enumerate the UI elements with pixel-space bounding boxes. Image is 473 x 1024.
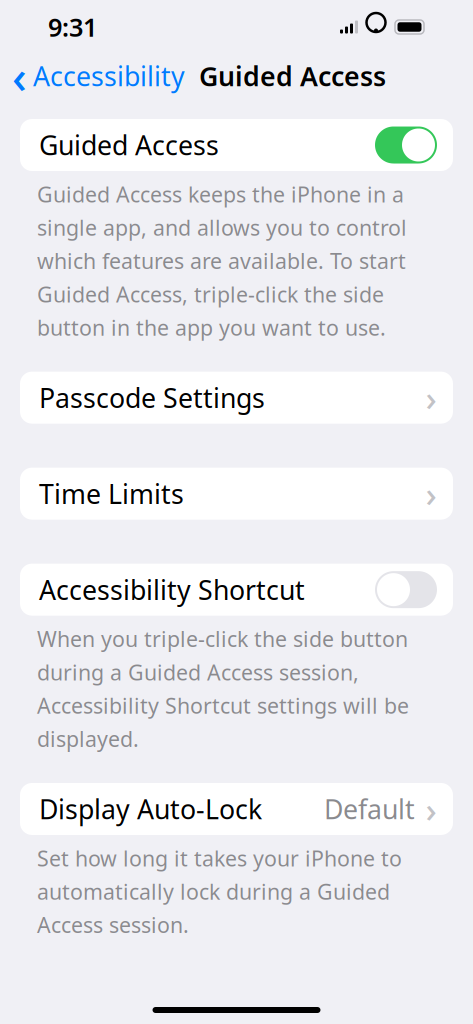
button[interactable]: ‹ (0, 54, 189, 98)
staticText: › (425, 786, 436, 832)
staticText: Passcode Settings (39, 380, 265, 415)
staticText: Guided Access (199, 58, 386, 94)
button[interactable]: Passcode Settings (20, 372, 453, 424)
button[interactable]: Accessibility Shortcut (20, 564, 453, 616)
button[interactable]: Display Auto-Lock (20, 783, 453, 835)
staticText: › (425, 375, 436, 421)
staticText: ‹ (12, 46, 27, 106)
staticText: Guided Access (39, 127, 219, 163)
staticText: Default (324, 791, 415, 827)
staticText: Set how long it takes your iPhone to aut… (37, 844, 402, 939)
staticText: 9:31 (48, 10, 97, 44)
staticText: Display Auto-Lock (39, 791, 262, 827)
button[interactable]: Guided Access (20, 119, 453, 171)
staticText: Accessibility Shortcut (39, 572, 305, 607)
staticText: When you triple-click the side button du… (37, 625, 409, 753)
staticText: Accessibility (33, 58, 185, 94)
staticText: Time Limits (39, 476, 184, 511)
button[interactable]: Time Limits (20, 468, 453, 520)
staticText: › (425, 471, 436, 517)
staticText: Guided Access keeps the iPhone in a sing… (37, 180, 407, 342)
